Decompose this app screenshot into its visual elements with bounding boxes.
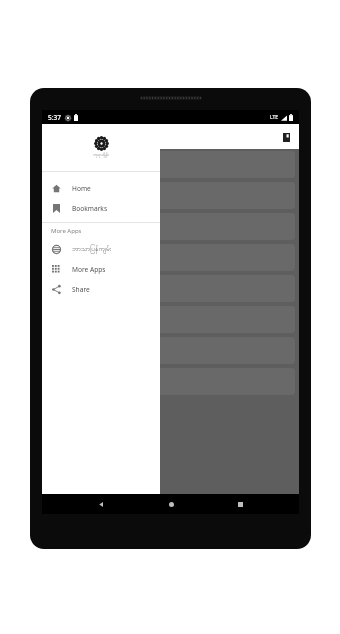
staticText: Home <box>72 184 91 193</box>
button[interactable]: Bookmarks <box>278 129 294 145</box>
staticText: LTE <box>270 114 279 121</box>
button[interactable] <box>46 306 295 333</box>
button[interactable]: Recent apps <box>230 494 250 514</box>
button[interactable]: Share <box>42 279 160 299</box>
staticText: ဘာသာပြန်ကျမ်း <box>72 244 112 254</box>
button[interactable] <box>46 213 295 240</box>
button[interactable]: Back <box>91 494 111 514</box>
staticText: ဘုရားရှိခိုး <box>93 152 110 159</box>
button[interactable]: ဘာသာပြန်ကျမ်း <box>42 239 160 259</box>
button[interactable]: Home <box>42 178 160 198</box>
staticText: Bookmarks <box>72 204 108 213</box>
button[interactable] <box>46 151 295 178</box>
button[interactable]: Home <box>161 494 181 514</box>
staticText: More Apps <box>51 227 82 235</box>
button[interactable]: Bookmarks <box>42 198 160 218</box>
staticText: ဘုရားရှိခိုးနှင့်ဂါထာတော်များ <box>69 130 155 143</box>
button[interactable] <box>46 182 295 209</box>
button[interactable] <box>46 368 295 395</box>
button[interactable]: More Apps <box>42 259 160 279</box>
button[interactable] <box>46 337 295 364</box>
button[interactable] <box>46 244 295 271</box>
staticText: More Apps <box>72 265 106 274</box>
button[interactable] <box>46 275 295 302</box>
staticText: Share <box>72 285 90 294</box>
staticText: 5:37 <box>48 113 61 122</box>
